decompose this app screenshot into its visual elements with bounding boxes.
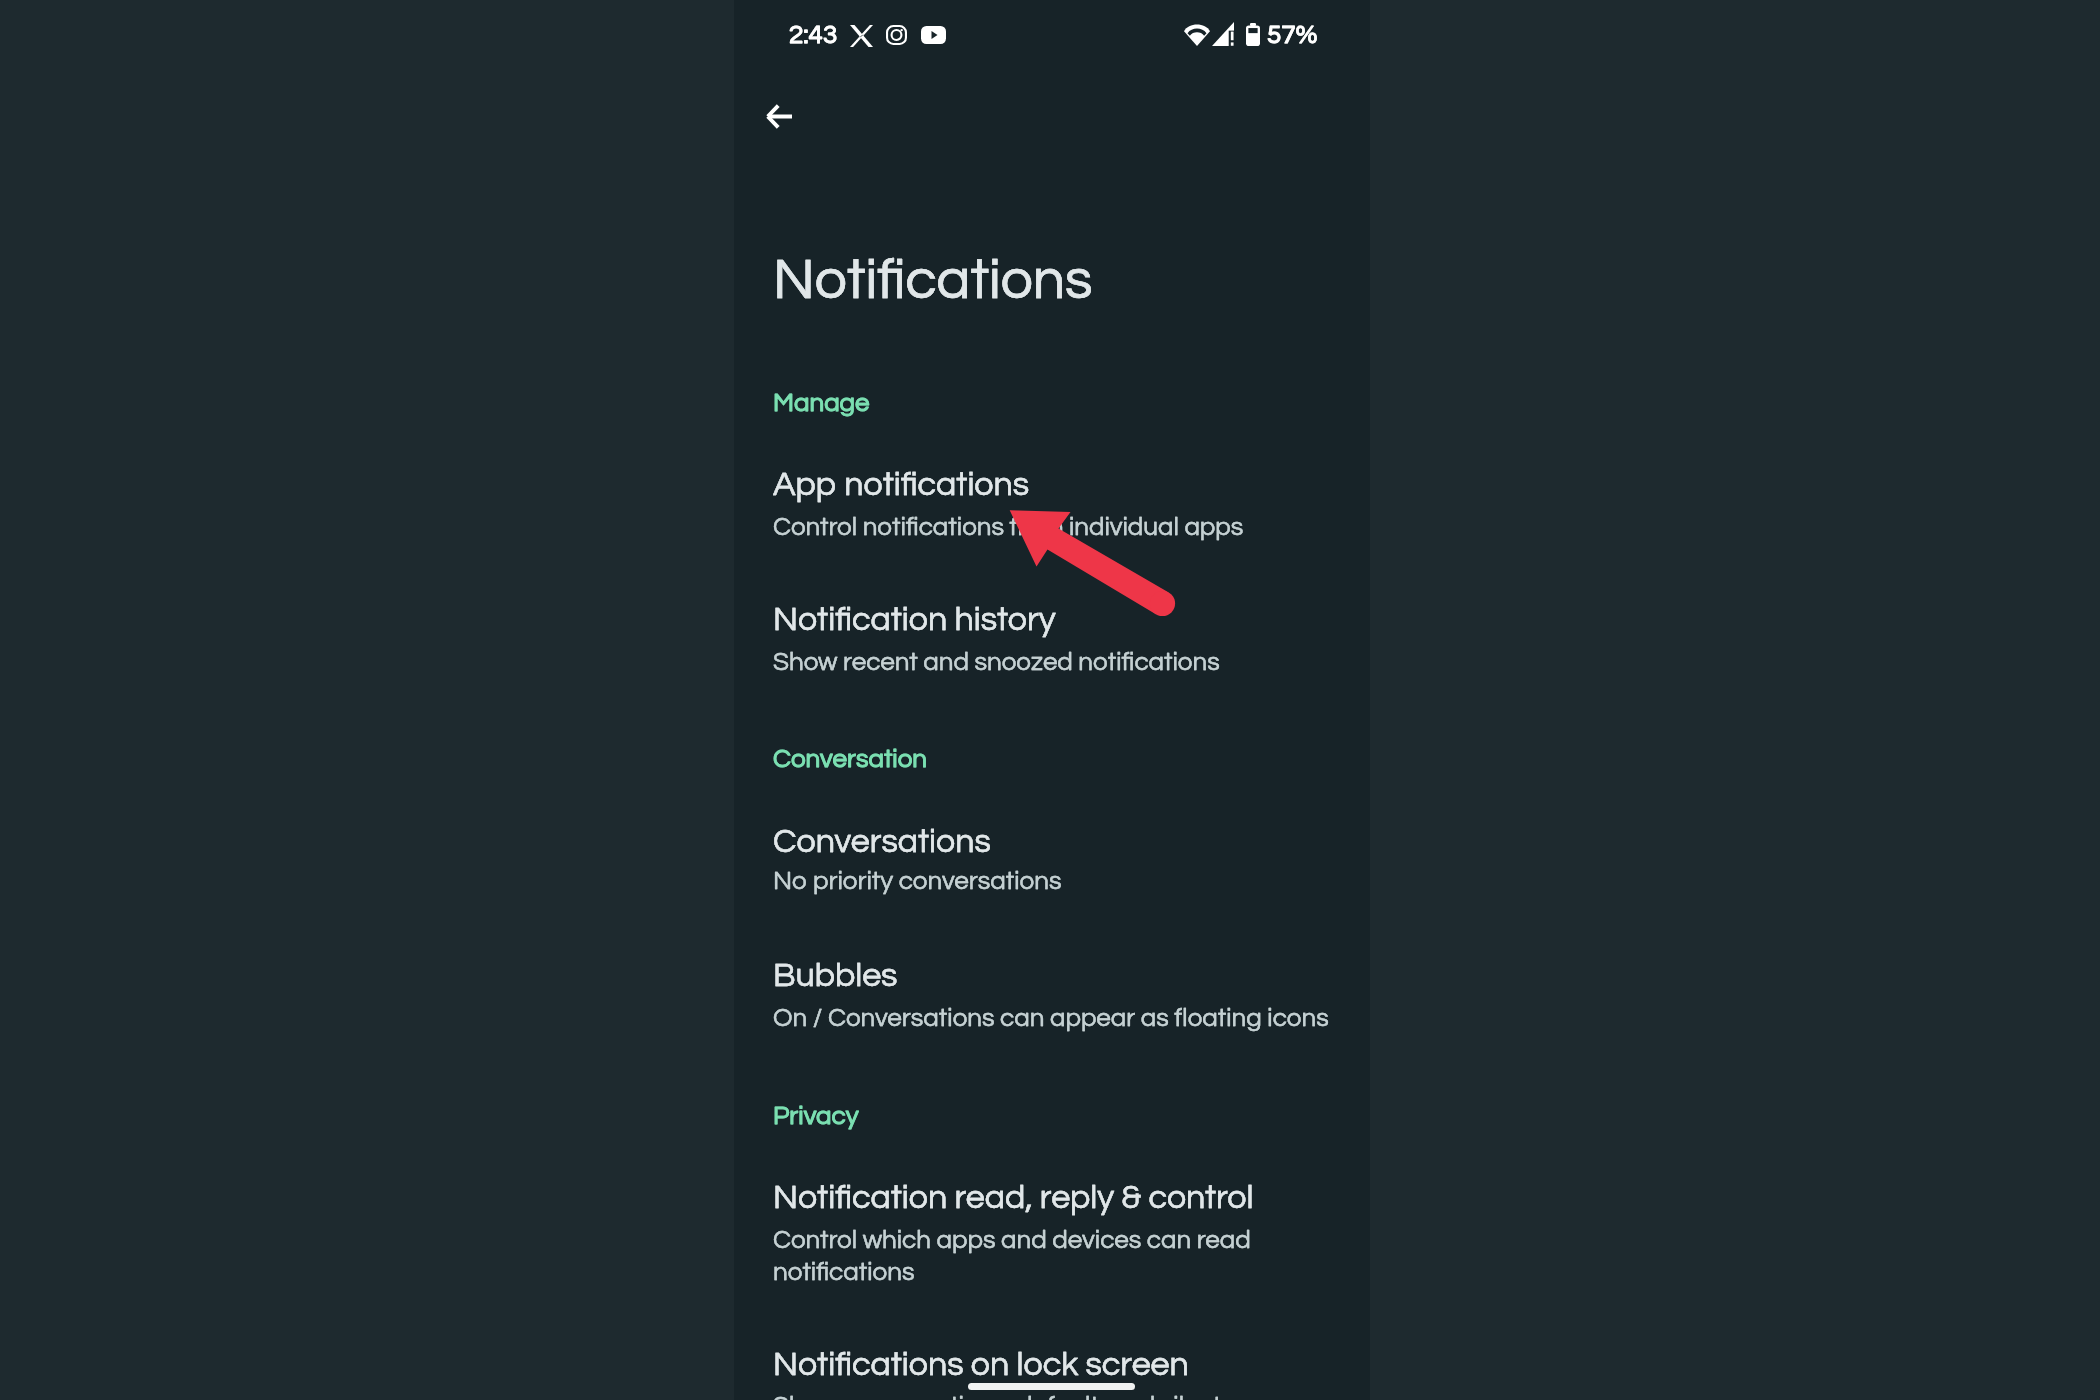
button[interactable] — [763, 1333, 1341, 1400]
staticText: 57% — [1267, 22, 1347, 49]
button[interactable] — [763, 1166, 1341, 1297]
staticText: Bubbles — [773, 958, 1331, 993]
staticText: Notifications on lock screen — [773, 1347, 1331, 1382]
button[interactable] — [763, 810, 1341, 906]
staticText: Notifications — [773, 251, 1331, 310]
button[interactable]: Conversation — [765, 738, 936, 781]
button[interactable] — [763, 944, 1341, 1043]
staticText: Notification history — [773, 602, 1331, 637]
staticText: Control which apps and devices can read … — [773, 1227, 1331, 1286]
staticText: Show recent and snoozed notifications — [773, 649, 1331, 676]
staticText: Control which apps and devices can read … — [773, 1227, 1331, 1286]
staticText: 57% — [1267, 22, 1347, 49]
staticText: On / Conversations can appear as floatin… — [773, 1005, 1331, 1032]
button[interactable] — [763, 453, 1341, 552]
button[interactable]: Privacy — [765, 1095, 867, 1138]
staticText: Manage — [773, 390, 870, 417]
staticText: Show conversations, default, and silent — [773, 1393, 1331, 1400]
staticText: App notifications — [773, 467, 1331, 502]
button[interactable]: Back — [749, 86, 809, 146]
staticText: Notification history — [773, 602, 1331, 637]
staticText: Control notifications from individual ap… — [773, 514, 1331, 541]
staticText: Conversation — [773, 746, 928, 773]
staticText: Notifications on lock screen — [773, 1347, 1331, 1382]
staticText: Control notifications from individual ap… — [773, 514, 1331, 541]
button[interactable] — [763, 588, 1341, 687]
staticText: Bubbles — [773, 958, 1331, 993]
staticText: No priority conversations — [773, 868, 1331, 895]
button[interactable]: Manage — [765, 382, 878, 425]
staticText: Privacy — [773, 1103, 859, 1130]
staticText: 2:43 — [789, 22, 869, 49]
staticText: Notification read, reply & control — [773, 1180, 1331, 1215]
staticText: No priority conversations — [773, 868, 1331, 895]
staticText: Notification read, reply & control — [773, 1180, 1331, 1215]
staticText: Conversations — [773, 824, 1331, 859]
staticText: Show recent and snoozed notifications — [773, 649, 1331, 676]
staticText: Show conversations, default, and silent — [773, 1393, 1331, 1400]
staticText: Privacy — [773, 1103, 859, 1130]
staticText: On / Conversations can appear as floatin… — [773, 1005, 1331, 1032]
staticText: Notifications — [773, 251, 1331, 310]
staticText: App notifications — [773, 467, 1331, 502]
staticText: Conversation — [773, 746, 928, 773]
staticText: Conversations — [773, 824, 1331, 859]
staticText: Manage — [773, 390, 870, 417]
staticText: 2:43 — [789, 22, 869, 49]
